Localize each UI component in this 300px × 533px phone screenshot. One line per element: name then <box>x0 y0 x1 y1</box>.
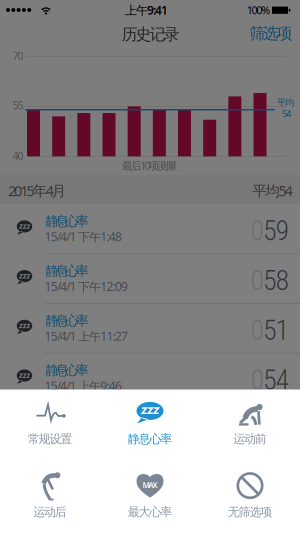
button[interactable]: 静息心率 <box>100 392 200 452</box>
staticText: 静息心率 <box>45 213 88 229</box>
staticText: 59 <box>263 214 289 247</box>
button[interactable]: 运动前 <box>200 392 300 452</box>
staticText: 运动前 <box>233 432 267 446</box>
staticText: 筛选项 <box>249 24 293 43</box>
staticText: 静息心率 <box>45 263 88 279</box>
staticText: 15/4/1 下午12:09 <box>44 278 128 294</box>
staticText: 54 <box>282 107 291 119</box>
staticText: 0 <box>250 264 264 297</box>
button[interactable]: 静息心率 <box>0 204 300 254</box>
staticText: 58 <box>263 264 289 297</box>
staticText: 历史记录 <box>121 24 179 44</box>
staticText: 15/4/1 下午1:48 <box>44 229 122 245</box>
staticText: 0 <box>250 214 264 247</box>
staticText: 上午9:41 <box>125 2 168 18</box>
staticText: 51 <box>263 314 289 347</box>
staticText: 100% <box>247 3 270 17</box>
staticText: 2015年4月 <box>8 181 67 200</box>
button[interactable]: 无筛选项 <box>200 465 300 525</box>
staticText: 70 <box>13 49 23 63</box>
button[interactable]: 静息心率 <box>0 254 300 303</box>
staticText: 15/4/1 上午11:27 <box>44 328 128 344</box>
button[interactable]: MAX <box>100 465 200 525</box>
staticText: 静息心率 <box>128 432 172 446</box>
staticText: 0 <box>250 363 264 396</box>
staticText: 最大心率 <box>128 505 172 519</box>
button[interactable]: 静息心率 <box>0 353 300 403</box>
staticText: 常规设置 <box>28 432 72 446</box>
staticText: 平均 <box>277 97 294 108</box>
staticText: 54 <box>263 363 289 396</box>
staticText: 静息心率 <box>45 312 88 329</box>
staticText: 15/4/1 上午9:46 <box>44 378 122 394</box>
button[interactable]: 静息心率 <box>0 303 300 353</box>
staticText: 无筛选项 <box>228 505 272 519</box>
staticText: 平均54 <box>252 181 292 200</box>
staticText: MAX <box>142 480 157 490</box>
staticText: 40 <box>13 149 23 163</box>
staticText: 55 <box>13 98 23 112</box>
button[interactable]: 筛选项 <box>243 19 299 47</box>
button[interactable]: 常规设置 <box>0 392 100 452</box>
staticText: 0 <box>250 314 264 347</box>
staticText: 静息心率 <box>45 362 88 379</box>
staticText: 运动后 <box>33 505 67 519</box>
staticText: 最后10项测量 <box>122 158 178 173</box>
button[interactable]: 运动后 <box>0 465 100 525</box>
